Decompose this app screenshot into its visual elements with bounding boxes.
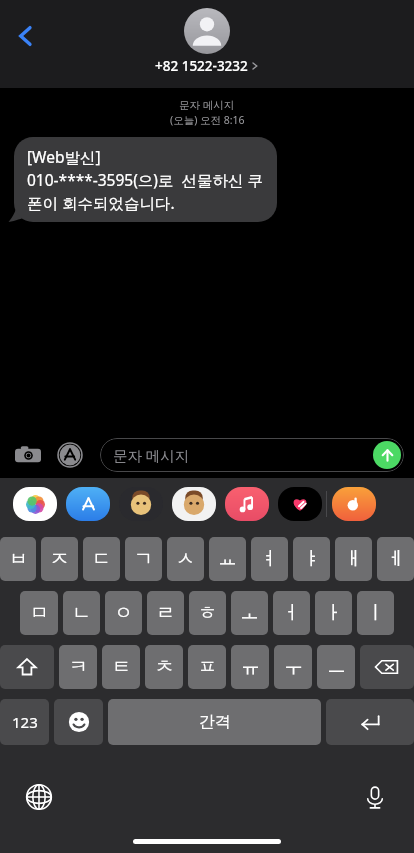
button[interactable]: ㅋ bbox=[59, 645, 97, 689]
button[interactable]: Memoji bbox=[114, 478, 167, 530]
button[interactable]: App Store bbox=[61, 478, 114, 530]
button[interactable]: ㅜ bbox=[274, 645, 312, 689]
button[interactable]: ㅅ bbox=[167, 537, 204, 581]
staticText: ㅐ bbox=[344, 547, 363, 571]
staticText: ㄹ bbox=[156, 601, 175, 625]
staticText: ㄱ bbox=[134, 547, 153, 571]
staticText: ㅂ bbox=[9, 547, 28, 571]
button[interactable]: ㅓ bbox=[273, 591, 310, 635]
button[interactable]: ㅠ bbox=[231, 645, 269, 689]
staticText: ㄷ bbox=[92, 547, 111, 571]
button[interactable]: ㅏ bbox=[315, 591, 352, 635]
staticText: ㅕ bbox=[260, 547, 279, 571]
staticText: ㅔ bbox=[386, 547, 405, 571]
button[interactable]: ㅂ bbox=[0, 537, 36, 581]
button[interactable]: Memoji 2 bbox=[167, 478, 220, 530]
button[interactable]: Camera bbox=[10, 437, 46, 473]
button[interactable]: ㄴ bbox=[63, 591, 100, 635]
staticText: 간격 bbox=[199, 712, 231, 732]
button[interactable]: ㅌ bbox=[102, 645, 140, 689]
staticText: 폰이 회수되었습니다. bbox=[27, 192, 175, 213]
staticText: ㅈ bbox=[50, 547, 69, 571]
staticText: 문자 메시지 bbox=[113, 445, 190, 465]
button[interactable]: ㅁ bbox=[20, 591, 58, 635]
button[interactable]: ㅈ bbox=[41, 537, 78, 581]
button[interactable]: ㄹ bbox=[147, 591, 184, 635]
staticText: ㅌ bbox=[112, 655, 131, 679]
button[interactable]: ㅕ bbox=[251, 537, 288, 581]
staticText: ㅇ bbox=[114, 601, 133, 625]
button[interactable]: App Store bbox=[52, 437, 88, 473]
button[interactable]: ㅊ bbox=[145, 645, 183, 689]
button[interactable]: Fitness bbox=[273, 478, 326, 530]
button[interactable]: [Web발신] bbox=[8, 137, 304, 222]
button[interactable]: +82 1522-3232 bbox=[155, 8, 259, 75]
button[interactable]: 간격 bbox=[108, 699, 321, 745]
staticText: ㅡ bbox=[327, 655, 346, 679]
staticText: 010-****-3595(으)로 선물하신 쿠 bbox=[27, 169, 264, 190]
button[interactable]: ㅔ bbox=[377, 537, 414, 581]
staticText: [Web발신] bbox=[27, 146, 101, 167]
staticText: 123 bbox=[12, 712, 38, 732]
button[interactable]: More bbox=[327, 478, 380, 530]
button[interactable]: ㅛ bbox=[209, 537, 246, 581]
staticText: ㅜ bbox=[284, 655, 303, 679]
button[interactable]: Music bbox=[220, 478, 273, 530]
staticText: ㅗ bbox=[240, 601, 259, 625]
button[interactable]: Back bbox=[6, 16, 46, 56]
button[interactable]: 123 bbox=[0, 699, 49, 745]
staticText: ㅓ bbox=[282, 601, 301, 625]
button[interactable]: Photos bbox=[8, 478, 61, 530]
button[interactable]: Shift bbox=[0, 645, 54, 689]
button[interactable]: ㄷ bbox=[83, 537, 120, 581]
button[interactable]: ㅑ bbox=[293, 537, 330, 581]
button[interactable]: Return bbox=[326, 699, 414, 745]
staticText: ㅣ bbox=[366, 601, 385, 625]
button[interactable]: ㄱ bbox=[125, 537, 162, 581]
staticText: +82 1522-3232 bbox=[155, 57, 248, 75]
button[interactable]: ㅎ bbox=[189, 591, 226, 635]
staticText: ㅏ bbox=[324, 601, 343, 625]
button[interactable]: ㅡ bbox=[317, 645, 355, 689]
staticText: (오늘) 오전 8:16 bbox=[170, 113, 245, 127]
staticText: 문자 메시지 bbox=[179, 98, 235, 112]
button[interactable]: ㅣ bbox=[357, 591, 394, 635]
button[interactable]: ㅍ bbox=[188, 645, 226, 689]
button[interactable]: Emoji bbox=[54, 699, 103, 745]
staticText: ㅍ bbox=[198, 655, 217, 679]
button[interactable]: ㅐ bbox=[335, 537, 372, 581]
button[interactable]: Backspace bbox=[360, 645, 414, 689]
staticText: ㅠ bbox=[241, 655, 260, 679]
button[interactable]: Dictation bbox=[354, 776, 396, 818]
staticText: ㅋ bbox=[69, 655, 88, 679]
button[interactable]: 문자 메시지 bbox=[100, 438, 404, 472]
staticText: ㅛ bbox=[218, 547, 237, 571]
button[interactable]: ㅇ bbox=[105, 591, 142, 635]
staticText: ㅁ bbox=[30, 601, 49, 625]
staticText: ㅑ bbox=[302, 547, 321, 571]
staticText: ㅎ bbox=[198, 601, 217, 625]
button[interactable]: Switch keyboard bbox=[18, 776, 60, 818]
button[interactable]: ㅗ bbox=[231, 591, 268, 635]
button[interactable]: Send bbox=[373, 441, 401, 469]
staticText: ㅊ bbox=[155, 655, 174, 679]
staticText: ㅅ bbox=[176, 547, 195, 571]
staticText: ㄴ bbox=[72, 601, 91, 625]
